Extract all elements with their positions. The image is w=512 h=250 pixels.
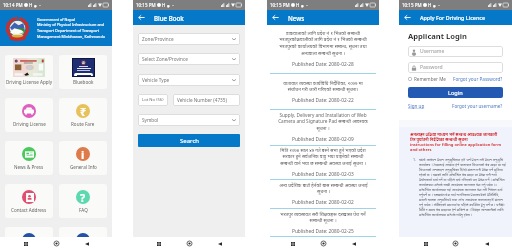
- staticText: Vehicle Number (4735): [177, 97, 227, 103]
- button[interactable]: Lot No (56): [138, 94, 168, 106]
- staticText: Government of Nepal Ministry of Physical…: [37, 17, 106, 39]
- button[interactable]: Remember Me: [408, 76, 446, 82]
- staticText: Blue Book: [154, 14, 184, 22]
- staticText: ●: [34, 4, 37, 7]
- button[interactable]: Select Zone/Province: [138, 53, 240, 65]
- staticText: Apply For Driving Licence: [420, 14, 486, 21]
- staticText: Bluebook: [73, 79, 94, 85]
- staticText: 10:15 PM: [270, 2, 290, 8]
- button[interactable]: ₹: [59, 98, 107, 132]
- button[interactable]: Back: [270, 12, 281, 23]
- staticText: FAQ: [79, 207, 88, 213]
- button[interactable]: Home: [451, 239, 460, 248]
- staticText: डाकवालाको लागि प्रदेश नं १ भित्रको सम्बन…: [279, 30, 367, 57]
- button[interactable]: [5, 227, 53, 250]
- staticText: ··: [306, 3, 309, 8]
- button[interactable]: Home: [185, 239, 194, 248]
- staticText: 10:15 PM: [402, 2, 422, 8]
- button[interactable]: मिति २०७४ साल ४७ गते बस्ने सभा हुने भएको…: [267, 146, 379, 179]
- button[interactable]: News & Press: [5, 141, 53, 175]
- staticText: 10:15 PM: [136, 2, 156, 8]
- staticText: ₹: [80, 104, 87, 118]
- staticText: News: [288, 14, 305, 22]
- staticText: Zone/Province: [142, 36, 174, 42]
- staticText: यस्तो आवेदन प्रदान अनुसूचितमा हरु भर्न प…: [419, 157, 507, 217]
- staticText: i: [81, 147, 85, 161]
- staticText: Route Fare: [71, 121, 95, 127]
- button[interactable]: Forgot your Password?: [453, 76, 503, 82]
- staticText: Contact Address: [11, 207, 47, 213]
- staticText: Published Date: 2080-02-02: [292, 199, 354, 206]
- button[interactable]: Recents: [21, 239, 30, 248]
- staticText: Published Date: 2080-02-03: [292, 171, 354, 178]
- staticText: Password: [420, 64, 443, 71]
- button[interactable]: Search: [138, 134, 240, 147]
- button[interactable]: Home: [52, 239, 61, 248]
- button[interactable]: Vehicle Number (4735): [173, 94, 240, 106]
- staticText: ●: [301, 4, 304, 7]
- button[interactable]: Back: [82, 239, 91, 248]
- button[interactable]: [59, 227, 107, 250]
- staticText: अनलाइन प्रक्रिया माध्यम भर्ने सम्बन्ध आव…: [410, 132, 502, 152]
- staticText: Published Date: 2080-02-28: [292, 61, 354, 68]
- staticText: मिति २०७४ साल ४७ गते बस्ने सभा हुने भएको…: [280, 147, 366, 167]
- staticText: Select Zone/Province: [142, 56, 188, 62]
- staticText: Search: [180, 137, 199, 145]
- button[interactable]: Login: [408, 87, 503, 98]
- button[interactable]: Recents: [421, 239, 430, 248]
- staticText: Driving License Apply: [6, 79, 53, 85]
- button[interactable]: Recents: [154, 239, 163, 248]
- staticText: 10:14 PM: [3, 2, 23, 8]
- staticText: H: [162, 2, 166, 8]
- button[interactable]: Contact Address: [5, 184, 53, 218]
- button[interactable]: Recents: [288, 239, 297, 248]
- button[interactable]: Driving License Apply: [5, 55, 53, 89]
- button[interactable]: Sign up: [408, 103, 425, 109]
- staticText: Symbol: [142, 117, 159, 123]
- button[interactable]: Home: [319, 239, 328, 248]
- button[interactable]: Zone/Province: [138, 33, 240, 45]
- staticText: H: [29, 2, 33, 8]
- button[interactable]: डाकवालाको लागि प्रदेश नं १ भित्रको सम्बन…: [267, 25, 379, 73]
- button[interactable]: Bluebook: [59, 55, 107, 89]
- staticText: Login: [448, 89, 463, 97]
- button[interactable]: Symbol: [138, 114, 240, 126]
- button[interactable]: अन्य प्रदेशिक बाटो हेर्नको बास सम्बन्धी …: [267, 180, 379, 208]
- staticText: Lot No (56): [142, 97, 164, 103]
- button[interactable]: ?: [59, 184, 107, 218]
- button[interactable]: Back: [482, 239, 491, 248]
- staticText: Supply, Delivery and Installation of Web…: [278, 112, 368, 132]
- button[interactable]: भरतपुर व्यवसायत सरी शिक्षकहरू दरखास्त पे…: [267, 209, 379, 236]
- button[interactable]: Forgot your username?: [452, 103, 503, 109]
- button[interactable]: Back: [215, 239, 224, 248]
- button[interactable]: Driving License: [5, 98, 53, 132]
- staticText: अन्य प्रदेशिक बाटो हेर्नको बास सम्बन्धी …: [279, 182, 368, 195]
- button[interactable]: i: [59, 141, 107, 175]
- staticText: ··: [172, 3, 175, 8]
- staticText: ··: [438, 3, 441, 8]
- button[interactable]: Username: [408, 46, 503, 57]
- button[interactable]: Back: [349, 239, 358, 248]
- staticText: General Info: [70, 164, 97, 170]
- staticText: 1.: [413, 157, 417, 162]
- staticText: भरतपुर व्यवसायत सरी शिक्षकहरू दरखास्त पे…: [280, 211, 366, 224]
- staticText: Published Date: 2080-02-22: [292, 97, 354, 104]
- staticText: Username: [420, 48, 445, 55]
- staticText: ●: [167, 4, 170, 7]
- button[interactable]: Supply, Delivery and Installation of Web…: [267, 110, 379, 145]
- staticText: Vehicle Type: [142, 77, 170, 83]
- staticText: H: [296, 2, 300, 8]
- staticText: Published Date: 2080-02-09: [292, 136, 354, 143]
- button[interactable]: Vehicle Type: [138, 74, 240, 86]
- staticText: Driving License: [13, 121, 46, 127]
- staticText: H: [428, 2, 432, 8]
- staticText: Applicant Login: [408, 31, 468, 41]
- button[interactable]: Password: [408, 62, 503, 73]
- button[interactable]: Back: [402, 12, 413, 23]
- button[interactable]: यातायात व्यवस्था कार्यविधि निर्देशिका, २…: [267, 74, 379, 109]
- staticText: ●: [433, 4, 436, 7]
- staticText: ?: [80, 190, 86, 204]
- button[interactable]: Back: [136, 12, 147, 23]
- staticText: Published Date: 2080-02-25: [292, 228, 354, 235]
- staticText: News & Press: [14, 164, 44, 170]
